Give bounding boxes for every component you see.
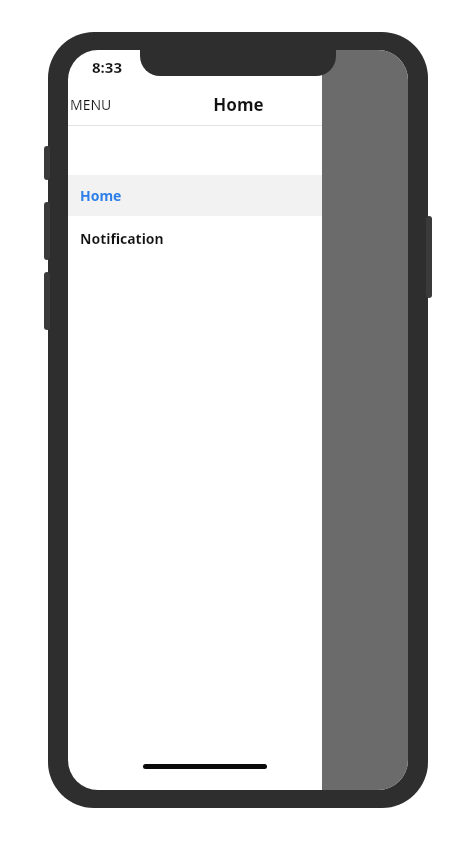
staticText: MENU [70, 95, 112, 114]
staticText: Home [80, 186, 122, 205]
button[interactable]: Notification [68, 216, 408, 261]
staticText: Notification [80, 229, 164, 248]
button[interactable]: Home [68, 175, 408, 216]
staticText: Home [213, 93, 264, 116]
button[interactable]: Close navigation drawer [322, 50, 408, 790]
button[interactable]: MENU [68, 89, 116, 120]
staticText: 8:33 [92, 57, 122, 77]
